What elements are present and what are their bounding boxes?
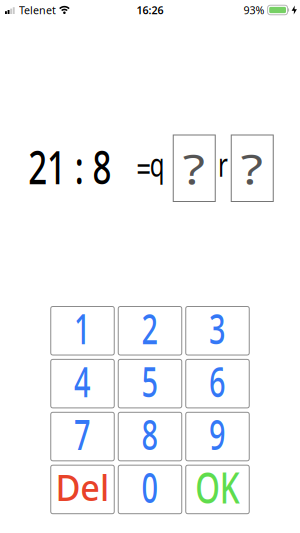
staticText: 93% bbox=[244, 3, 265, 17]
staticText: 9 bbox=[205, 407, 229, 461]
button[interactable]: 3 bbox=[186, 306, 249, 355]
staticText: Telenet bbox=[19, 3, 56, 17]
staticText: 21 : 8 bbox=[13, 137, 127, 197]
button[interactable]: 6 bbox=[186, 359, 249, 408]
button[interactable]: 2 bbox=[118, 306, 182, 355]
staticText: 5 bbox=[138, 354, 162, 409]
staticText: 6 bbox=[205, 354, 229, 409]
staticText: 3 bbox=[205, 301, 229, 356]
button[interactable]: 8 bbox=[118, 412, 182, 461]
staticText: r bbox=[216, 143, 229, 185]
button[interactable]: 7 bbox=[51, 412, 114, 461]
staticText: 2 bbox=[138, 301, 162, 356]
button[interactable]: 9 bbox=[186, 412, 249, 461]
staticText: 16:26 bbox=[136, 3, 163, 17]
staticText: ? bbox=[243, 140, 262, 197]
button[interactable]: OK bbox=[186, 465, 249, 514]
staticText: = bbox=[134, 145, 154, 191]
staticText: 8 bbox=[138, 407, 162, 461]
button[interactable]: 5 bbox=[118, 359, 182, 408]
button[interactable]: 1 bbox=[51, 306, 114, 355]
button[interactable]: Del bbox=[51, 465, 114, 514]
staticText: Del bbox=[54, 463, 111, 511]
button[interactable]: 4 bbox=[51, 359, 114, 408]
staticText: 0 bbox=[138, 459, 162, 514]
staticText: 4 bbox=[70, 354, 94, 409]
staticText: 1 bbox=[70, 301, 94, 356]
staticText: ? bbox=[185, 140, 204, 197]
button[interactable]: Quotient bbox=[173, 135, 215, 201]
staticText: q bbox=[147, 143, 167, 185]
button[interactable]: 0 bbox=[118, 465, 182, 514]
staticText: OK bbox=[187, 459, 247, 515]
button[interactable]: Remainder bbox=[231, 135, 273, 201]
staticText: 7 bbox=[70, 407, 94, 461]
